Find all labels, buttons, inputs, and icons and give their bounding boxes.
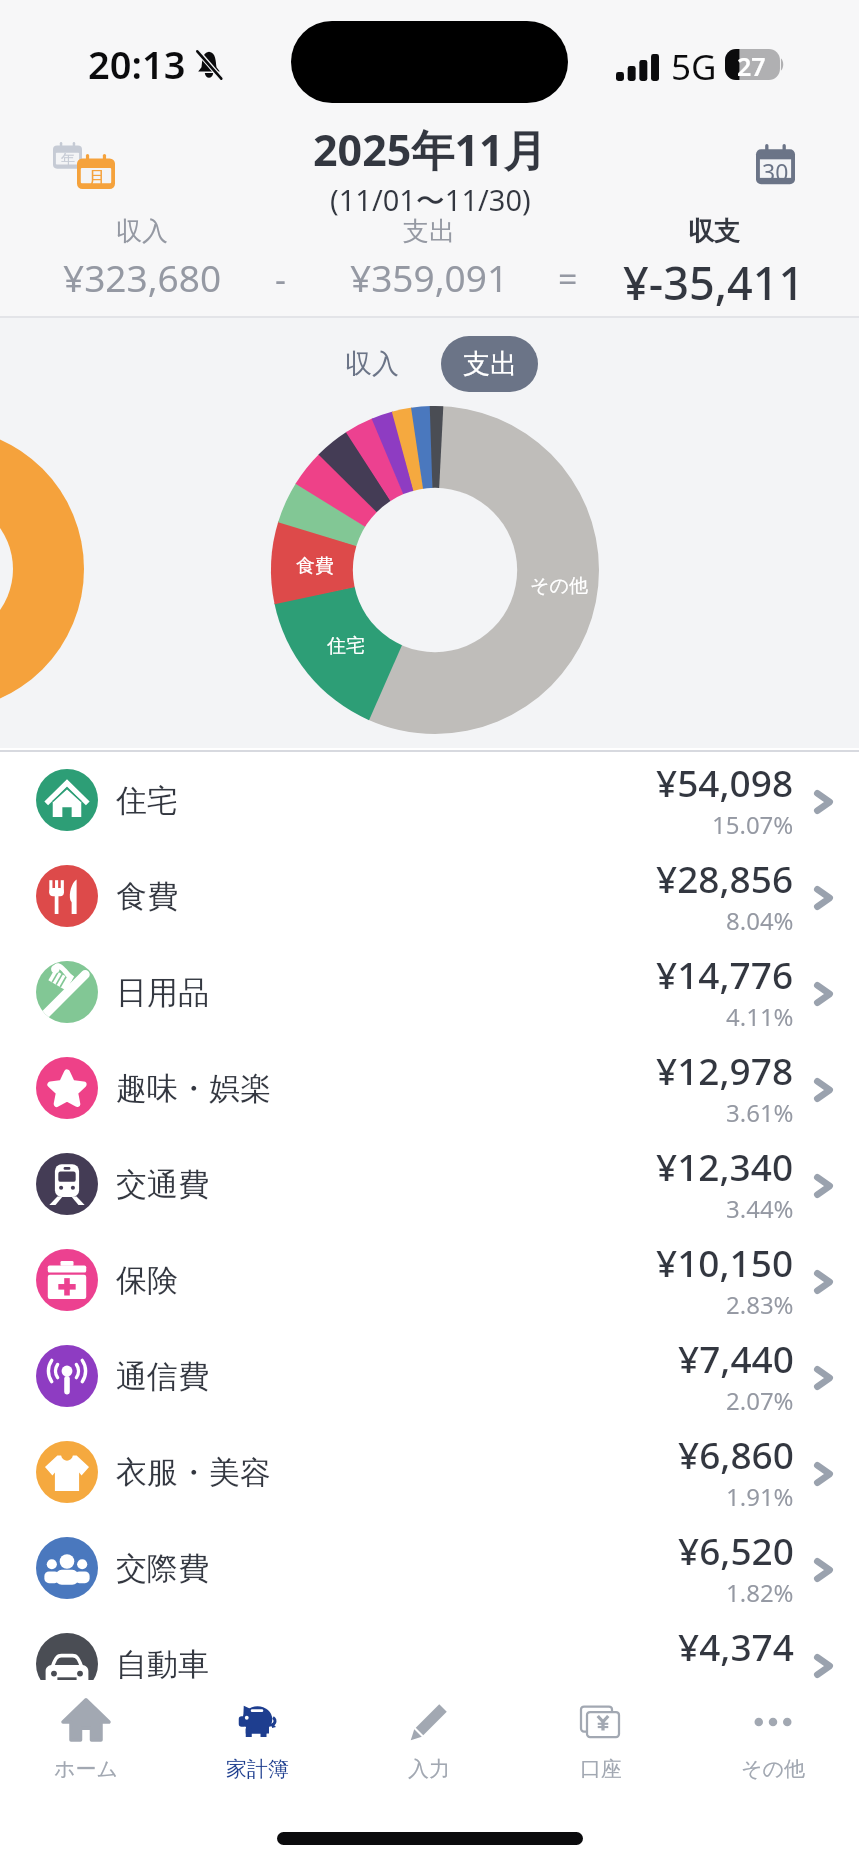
staticText: 収支	[688, 215, 740, 248]
staticText: 通信費	[116, 1357, 209, 1396]
staticText: 2.83%	[726, 1288, 794, 1321]
staticText: 4.11%	[726, 1000, 794, 1033]
staticText: ¥12,340	[656, 1141, 794, 1191]
staticText: 2.07%	[726, 1384, 794, 1417]
staticText: ¥6,860	[678, 1429, 794, 1479]
staticText: 交際費	[116, 1549, 209, 1588]
staticText: ¥323,680	[63, 252, 222, 302]
staticText: 住宅	[116, 781, 178, 820]
staticText: 1.82%	[726, 1576, 794, 1609]
staticText: 口座	[580, 1756, 622, 1782]
button[interactable]: 日用品	[0, 944, 859, 1040]
staticText: ¥12,978	[656, 1045, 794, 1095]
button[interactable]: 家計簿	[171, 1680, 343, 1799]
staticText: 3.61%	[726, 1096, 794, 1129]
staticText: =	[558, 256, 578, 302]
staticText: その他	[741, 1756, 805, 1782]
staticText: 年	[61, 151, 75, 169]
staticText: 交通費	[116, 1165, 209, 1204]
staticText: 30	[762, 156, 789, 187]
button[interactable]: 趣味・娯楽	[0, 1040, 859, 1136]
staticText: 15.07%	[712, 808, 794, 841]
staticText: 収入	[116, 215, 168, 248]
staticText: 1.91%	[726, 1480, 794, 1513]
staticText: 27	[737, 49, 766, 80]
staticText: 支出	[463, 347, 517, 381]
staticText: 保険	[116, 1261, 178, 1300]
staticText: ¥28,856	[656, 853, 794, 903]
staticText: ¥14,776	[656, 949, 794, 999]
staticText: 住宅	[327, 634, 365, 658]
button[interactable]: 交通費	[0, 1136, 859, 1232]
button[interactable]: 自動車	[0, 1616, 859, 1712]
button[interactable]: 通信費	[0, 1328, 859, 1424]
staticText: 自動車	[116, 1645, 209, 1684]
button[interactable]: 口座	[515, 1680, 687, 1799]
staticText: 20:13	[88, 38, 186, 90]
staticText: 3.44%	[726, 1192, 794, 1225]
staticText: 5G	[671, 43, 717, 91]
staticText: 食費	[116, 877, 178, 916]
button[interactable]: 収入	[332, 336, 412, 392]
button[interactable]: 衣服・美容	[0, 1424, 859, 1520]
button[interactable]: 食費	[0, 848, 859, 944]
button[interactable]: 入力	[343, 1680, 515, 1799]
button[interactable]: 交際費	[0, 1520, 859, 1616]
staticText: ¥359,091	[350, 252, 509, 302]
button[interactable]: ホーム	[0, 1680, 171, 1799]
button[interactable]: Switch period	[49, 142, 121, 204]
staticText: ホーム	[54, 1756, 118, 1782]
staticText: 食費	[296, 554, 334, 578]
staticText: 日用品	[116, 973, 209, 1012]
staticText: 8.04%	[726, 904, 794, 937]
staticText: ¥6,520	[678, 1525, 794, 1575]
staticText: 2025年11月	[313, 120, 547, 179]
button[interactable]: 保険	[0, 1232, 859, 1328]
staticText: -	[275, 256, 286, 302]
staticText: 支出	[403, 215, 455, 248]
button[interactable]: 支出	[441, 336, 538, 392]
staticText: 入力	[408, 1756, 450, 1782]
staticText: ¥54,098	[656, 757, 794, 807]
staticText: ¥-35,411	[623, 252, 805, 313]
staticText: 衣服・美容	[116, 1453, 271, 1492]
button[interactable]: その他	[687, 1680, 859, 1799]
staticText: その他	[530, 574, 588, 598]
staticText: 収入	[345, 347, 399, 381]
staticText: 趣味・娯楽	[116, 1069, 271, 1108]
button[interactable]: 住宅	[0, 752, 859, 848]
staticText: ¥7,440	[678, 1333, 794, 1383]
staticText: (11/01〜11/30)	[330, 180, 531, 220]
staticText: 家計簿	[226, 1756, 289, 1782]
staticText: ¥10,150	[656, 1237, 794, 1287]
staticText: 月	[87, 167, 106, 191]
button[interactable]: Select date	[756, 144, 795, 186]
staticText: ¥4,374	[678, 1621, 794, 1671]
